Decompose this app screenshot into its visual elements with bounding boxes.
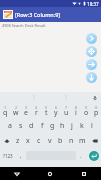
button[interactable]: Home bbox=[33, 167, 67, 180]
staticText: d bbox=[29, 121, 34, 131]
staticText: w bbox=[13, 108, 19, 118]
button[interactable]: d bbox=[26, 118, 37, 133]
staticText: p bbox=[94, 108, 99, 118]
staticText: 5 bbox=[45, 105, 48, 110]
staticText: h bbox=[60, 121, 65, 131]
button[interactable]: a bbox=[4, 118, 15, 133]
staticText: q bbox=[3, 108, 8, 118]
button[interactable]: h bbox=[57, 118, 67, 133]
button[interactable]: Move bbox=[86, 46, 97, 57]
staticText: a bbox=[8, 121, 12, 131]
staticText: 4 bbox=[35, 105, 38, 110]
staticText: t bbox=[45, 108, 48, 118]
staticText: . bbox=[80, 152, 82, 160]
staticText: v bbox=[48, 136, 52, 146]
staticText: o bbox=[84, 108, 89, 118]
button[interactable]: k bbox=[77, 118, 87, 133]
button[interactable]: Backspace bbox=[88, 133, 101, 148]
button[interactable]: b bbox=[55, 133, 66, 148]
button[interactable]: 8 bbox=[71, 103, 81, 118]
staticText: 3 bbox=[25, 105, 28, 110]
staticText: c bbox=[37, 136, 41, 146]
button[interactable]: Shift bbox=[0, 133, 13, 148]
staticText: b bbox=[58, 136, 63, 146]
button[interactable]: Back bbox=[0, 167, 33, 180]
button[interactable]: 3 bbox=[21, 103, 31, 118]
staticText: i bbox=[75, 108, 77, 118]
button[interactable]: m bbox=[77, 133, 88, 148]
staticText: n bbox=[69, 136, 74, 146]
staticText: 0 bbox=[95, 105, 98, 110]
button[interactable]: Enter bbox=[89, 151, 99, 161]
staticText: , bbox=[20, 152, 22, 160]
button[interactable]: 4 bbox=[31, 103, 41, 118]
button[interactable]: 6 bbox=[51, 103, 61, 118]
staticText: z bbox=[16, 136, 20, 146]
button[interactable]: Recents bbox=[67, 167, 101, 180]
button[interactable]: g bbox=[47, 118, 57, 133]
button[interactable]: n bbox=[66, 133, 77, 148]
staticText: ?123 bbox=[3, 153, 13, 159]
staticText: 7 bbox=[65, 105, 68, 110]
staticText: s bbox=[19, 121, 23, 131]
staticText: 8 bbox=[75, 105, 78, 110]
button[interactable]: 5 bbox=[41, 103, 51, 118]
button[interactable]: . bbox=[76, 148, 86, 163]
button[interactable]: j bbox=[67, 118, 77, 133]
staticText: 6 bbox=[55, 105, 58, 110]
button[interactable]: 9 bbox=[81, 103, 91, 118]
staticText: y bbox=[54, 108, 58, 118]
staticText: x bbox=[26, 136, 30, 146]
staticText: j bbox=[71, 121, 73, 131]
button[interactable]: App icon bbox=[3, 10, 13, 19]
staticText: 1 bbox=[4, 105, 7, 110]
button[interactable]: 1 bbox=[0, 103, 11, 118]
staticText: 4908 Search Desk Result bbox=[2, 23, 46, 28]
staticText: 2 bbox=[15, 105, 18, 110]
button[interactable]: Voice input bbox=[92, 95, 98, 101]
staticText: f bbox=[41, 121, 44, 131]
staticText: [Row:3 Column:9] bbox=[15, 11, 61, 18]
staticText: g bbox=[50, 121, 55, 131]
staticText: 18:37 bbox=[87, 1, 99, 7]
button[interactable]: z bbox=[13, 133, 23, 148]
staticText: e bbox=[24, 108, 28, 118]
button[interactable]: Down bbox=[86, 72, 97, 83]
button[interactable]: , bbox=[15, 148, 26, 163]
button[interactable]: 7 bbox=[61, 103, 71, 118]
staticText: 9 bbox=[85, 105, 88, 110]
staticText: u bbox=[64, 108, 69, 118]
button[interactable]: Forward bbox=[86, 59, 97, 70]
staticText: l bbox=[91, 121, 93, 131]
button[interactable]: v bbox=[44, 133, 55, 148]
button[interactable]: ?123 bbox=[0, 148, 15, 163]
button[interactable]: l bbox=[87, 118, 97, 133]
button[interactable]: Next bbox=[86, 33, 97, 44]
button[interactable]: c bbox=[33, 133, 44, 148]
button[interactable]: s bbox=[15, 118, 26, 133]
staticText: r bbox=[35, 108, 38, 118]
button[interactable]: 2 bbox=[11, 103, 21, 118]
button[interactable]: f bbox=[37, 118, 47, 133]
button[interactable]: x bbox=[23, 133, 33, 148]
button[interactable]: 0 bbox=[91, 103, 101, 118]
staticText: m bbox=[79, 136, 86, 146]
staticText: k bbox=[80, 121, 84, 131]
